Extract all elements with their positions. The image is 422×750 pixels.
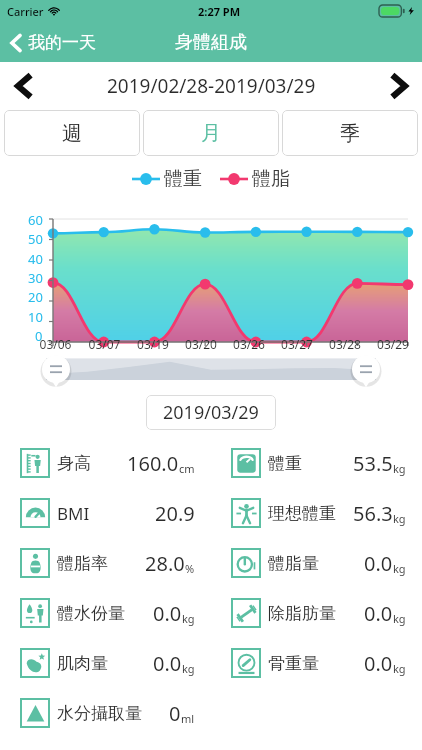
staticText: kg bbox=[393, 561, 406, 576]
button[interactable]: 除脂肪量 bbox=[211, 588, 422, 638]
staticText: 28.0 bbox=[145, 550, 185, 577]
staticText: 身體組成 bbox=[175, 31, 247, 54]
staticText: 2019/03/29 bbox=[163, 400, 259, 425]
staticText: 週 bbox=[62, 121, 82, 146]
staticText: kg bbox=[393, 611, 406, 626]
staticText: 骨重量 bbox=[268, 653, 319, 674]
staticText: 03/28 bbox=[321, 336, 369, 352]
staticText: 體重 bbox=[268, 453, 302, 474]
staticText: kg bbox=[393, 511, 406, 526]
staticText: 160.0 bbox=[127, 450, 179, 477]
staticText: 10 bbox=[28, 308, 43, 326]
button[interactable]: 體脂量 bbox=[211, 538, 422, 588]
staticText: 30 bbox=[28, 269, 43, 287]
staticText: 除脂肪量 bbox=[268, 603, 336, 624]
staticText: 0.0 bbox=[364, 600, 393, 627]
staticText: 2:27 PM bbox=[198, 4, 241, 19]
staticText: 03/07 bbox=[80, 336, 129, 352]
staticText: 身高 bbox=[57, 453, 91, 474]
staticText: BMI bbox=[57, 502, 90, 525]
button[interactable]: 體脂率 bbox=[0, 538, 211, 588]
staticText: 體脂率 bbox=[57, 553, 108, 574]
button[interactable]: 水分攝取量 bbox=[0, 688, 211, 738]
staticText: cm bbox=[179, 461, 195, 476]
staticText: 2019/02/28-2019/03/29 bbox=[107, 73, 316, 99]
button[interactable]: 週 bbox=[4, 110, 140, 156]
staticText: 03/26 bbox=[225, 336, 273, 352]
staticText: 53.5 bbox=[353, 450, 393, 477]
button[interactable]: 體水份量 bbox=[0, 588, 211, 638]
staticText: 03/06 bbox=[31, 336, 80, 352]
button[interactable]: Range selector bbox=[0, 352, 422, 392]
staticText: 體重 bbox=[164, 167, 202, 191]
staticText: kg bbox=[393, 661, 406, 676]
button[interactable]: 我的一天 bbox=[0, 28, 104, 57]
staticText: 理想體重 bbox=[268, 503, 336, 524]
staticText: Carrier bbox=[7, 4, 44, 19]
staticText: 0.0 bbox=[153, 600, 182, 627]
staticText: 肌肉量 bbox=[57, 653, 108, 674]
staticText: 60 bbox=[28, 211, 43, 229]
staticText: 體水份量 bbox=[57, 603, 125, 624]
staticText: 03/19 bbox=[129, 336, 177, 352]
staticText: 56.3 bbox=[353, 500, 393, 527]
button[interactable]: 骨重量 bbox=[211, 638, 422, 688]
button[interactable]: Next period bbox=[374, 62, 422, 110]
button[interactable]: 理想體重 bbox=[211, 488, 422, 538]
staticText: 40 bbox=[28, 250, 43, 268]
staticText: 0.0 bbox=[364, 550, 393, 577]
button[interactable]: 體重 bbox=[211, 438, 422, 488]
button[interactable]: 月 bbox=[143, 110, 279, 156]
staticText: 20.9 bbox=[155, 500, 195, 527]
staticText: kg bbox=[182, 661, 195, 676]
staticText: 我的一天 bbox=[28, 32, 96, 53]
staticText: ml bbox=[181, 711, 195, 726]
staticText: 體脂 bbox=[252, 167, 290, 191]
staticText: 0 bbox=[35, 327, 43, 345]
staticText: 20 bbox=[28, 288, 43, 306]
staticText: 03/20 bbox=[177, 336, 225, 352]
button[interactable]: 季 bbox=[282, 110, 418, 156]
button[interactable]: Previous period bbox=[0, 62, 48, 110]
staticText: 0.0 bbox=[153, 650, 182, 677]
staticText: 體脂量 bbox=[268, 553, 319, 574]
staticText: 0 bbox=[169, 700, 181, 727]
staticText: 03/27 bbox=[273, 336, 321, 352]
button[interactable]: BMI bbox=[0, 488, 211, 538]
button[interactable]: 2019/03/29 bbox=[146, 395, 276, 430]
button[interactable]: 肌肉量 bbox=[0, 638, 211, 688]
staticText: kg bbox=[393, 461, 406, 476]
button[interactable]: 身高 bbox=[0, 438, 211, 488]
staticText: 03/29 bbox=[369, 336, 417, 352]
staticText: 季 bbox=[340, 121, 360, 146]
staticText: kg bbox=[182, 611, 195, 626]
staticText: % bbox=[185, 561, 195, 576]
staticText: 水分攝取量 bbox=[57, 703, 142, 724]
staticText: 0.0 bbox=[364, 650, 393, 677]
staticText: 50 bbox=[28, 230, 43, 248]
staticText: 月 bbox=[201, 121, 221, 146]
